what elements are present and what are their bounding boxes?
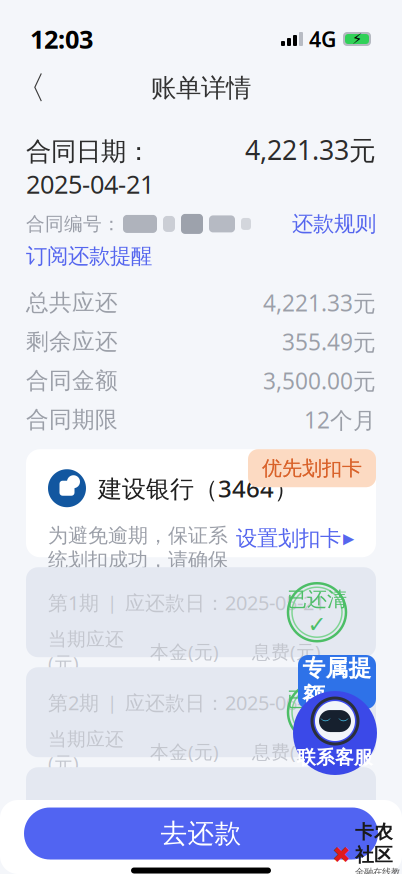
staticText: 订阅还款提醒 [26, 243, 152, 269]
staticText: 281.51 [150, 868, 249, 874]
staticText: ︶ [320, 714, 332, 728]
staticText: 专属提额 [302, 654, 371, 710]
staticText: 合同编号： [26, 212, 121, 235]
staticText: 4,221.33元 [263, 288, 376, 318]
staticText: ✓ [307, 612, 326, 637]
staticText: | [107, 690, 117, 715]
staticText: | [107, 590, 117, 615]
staticText: 息费(元) [252, 839, 321, 864]
button[interactable]: 联系客服 [290, 655, 380, 775]
staticText: ✓ [307, 712, 326, 737]
staticText: 4,221.33元 [245, 132, 376, 167]
staticText: 75.47 [252, 668, 333, 710]
button[interactable]: 返回 [8, 66, 52, 110]
staticText: 剩余应还 [26, 328, 118, 356]
staticText: 3,500.00元 [263, 366, 376, 396]
staticText: 应还款日：2025-07-21 [125, 789, 325, 816]
staticText: 4G [309, 25, 336, 53]
button[interactable]: 建设银行（3464） [26, 449, 376, 557]
staticText: 合同金额 [26, 367, 118, 395]
staticText: 已还清 [287, 587, 347, 612]
staticText: 本金(元) [150, 639, 219, 664]
staticText: 已还清 [287, 687, 347, 712]
button[interactable]: 还款规则 [292, 211, 376, 237]
button[interactable]: 设置划扣卡 [236, 525, 354, 551]
staticText: 355.49元 [282, 327, 376, 357]
staticText: 应还款日：2025-06-21 [125, 689, 325, 716]
staticText: 为避免逾期，保证系统划扣成功，请确保您 [48, 523, 228, 597]
staticText: 设置划扣卡 [236, 525, 341, 551]
staticText: ︶ [338, 714, 350, 728]
staticText: 合同日期：2025-04-21 [26, 136, 154, 201]
staticText: 账单详情 [151, 72, 251, 103]
staticText: ▶ [343, 530, 354, 547]
staticText: ⚡︎ [352, 31, 362, 47]
button[interactable]: 去还款 [24, 807, 378, 859]
staticText: 第2期 [48, 689, 99, 716]
button[interactable]: 订阅还款提醒 [26, 243, 152, 269]
staticText: 351.44 [48, 679, 147, 722]
staticText: 金融在线教育 [355, 866, 400, 874]
staticText: 卡农社区 [355, 821, 393, 866]
staticText: 去还款 [160, 817, 241, 850]
staticText: 351.44 [48, 779, 147, 822]
staticText: 优先划扣卡 [262, 456, 362, 480]
staticText: | [107, 790, 117, 815]
button[interactable]: 第2期 [26, 667, 376, 757]
staticText: 〈 [14, 68, 46, 108]
staticText: 69.93 [252, 868, 333, 874]
staticText: 优先划扣卡 [262, 456, 362, 480]
staticText: ✖ [332, 842, 351, 868]
staticText: 总共应还 [26, 289, 118, 317]
staticText: 应还款日：2025-05-21 [125, 589, 325, 616]
staticText: 合同期限 [26, 406, 118, 434]
staticText: 息费(元) [252, 739, 321, 764]
staticText: 第1期 [48, 589, 99, 616]
staticText: 73.78 [252, 768, 333, 810]
staticText: 还款规则 [292, 211, 376, 237]
button[interactable]: 第1期 [26, 567, 376, 657]
staticText: 建设银行（3464） [98, 472, 298, 504]
staticText: 息费(元) [252, 639, 321, 664]
staticText: 277.66 [150, 768, 249, 810]
staticText: 当期应还(元) [48, 728, 124, 775]
staticText: 当期应还(元) [48, 628, 124, 675]
staticText: 当期应还(元) [48, 828, 124, 874]
staticText: 第3期 [48, 789, 99, 816]
staticText: 12:03 [30, 22, 93, 56]
staticText: 本金(元) [150, 839, 219, 864]
staticText: 卡内余额充足 [48, 603, 168, 627]
staticText: 联系客服 [297, 746, 373, 769]
staticText: 本金(元) [150, 739, 219, 764]
staticText: 12个月 [304, 405, 376, 435]
staticText: 275.97 [150, 668, 249, 710]
button[interactable]: 第3期 [26, 767, 376, 857]
